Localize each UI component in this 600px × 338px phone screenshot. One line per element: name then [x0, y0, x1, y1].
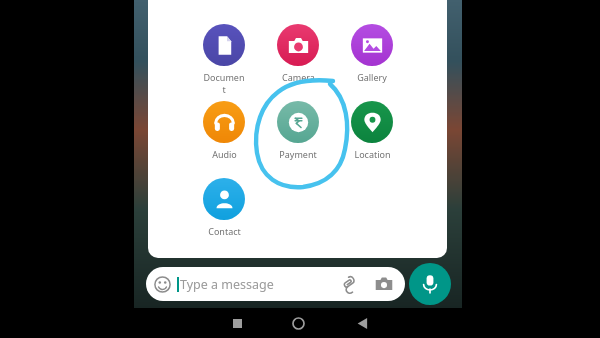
staticText: Type a message [180, 276, 274, 293]
staticText: Payment [279, 148, 317, 160]
button[interactable]: Gallery [351, 24, 393, 83]
button[interactable]: Location [351, 101, 393, 160]
button[interactable]: Payment [277, 101, 319, 160]
other: Emoji [154, 276, 171, 293]
button[interactable]: Recents [226, 312, 248, 334]
staticText: Gallery [357, 71, 387, 83]
other: Attach file [340, 275, 359, 294]
button[interactable]: Contact [203, 178, 245, 237]
button[interactable]: Back [351, 312, 373, 334]
staticText: Location [354, 148, 391, 160]
staticText: Document [203, 71, 245, 95]
staticText: Contact [208, 225, 241, 237]
staticText: Camera [282, 71, 315, 83]
button[interactable]: Audio [203, 101, 245, 160]
button[interactable]: Camera [277, 24, 319, 83]
button[interactable]: Record voice message [409, 263, 451, 305]
button[interactable]: Document [203, 24, 245, 95]
other: Take photo [375, 275, 393, 293]
button[interactable]: Emoji [146, 267, 405, 301]
staticText: Audio [212, 148, 237, 160]
button[interactable]: Home [287, 312, 309, 334]
